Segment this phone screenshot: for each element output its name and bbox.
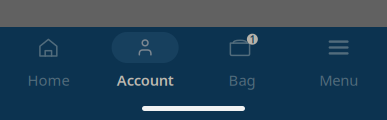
staticText: Menu <box>319 70 358 90</box>
staticText: Bag <box>228 70 255 90</box>
button[interactable]: 1 <box>193 27 290 93</box>
staticText: Home <box>27 70 69 90</box>
button[interactable]: Home <box>0 27 97 93</box>
button[interactable]: Account <box>97 27 194 93</box>
staticText: Account <box>117 70 174 90</box>
button[interactable]: Menu <box>290 27 387 93</box>
staticText: 1 <box>249 32 255 46</box>
